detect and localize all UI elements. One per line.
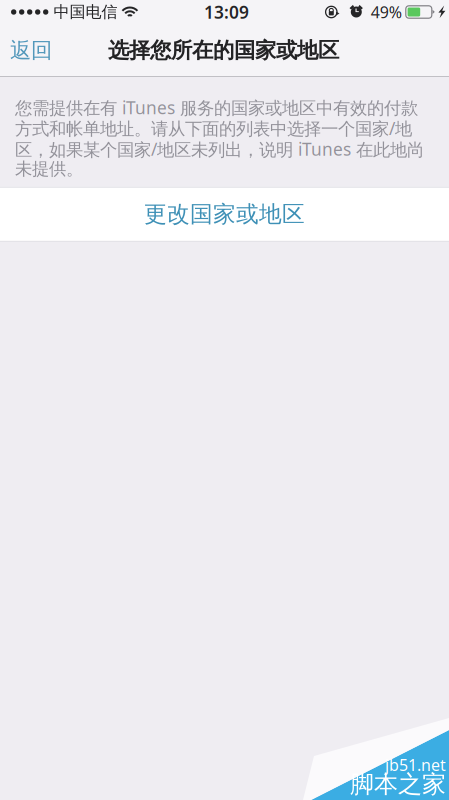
staticText: 选择您所在的国家或地区 [108, 37, 339, 64]
staticText: jb51.net [385, 754, 446, 775]
staticText: 更改国家或地区 [144, 200, 305, 228]
staticText: 13:09 [204, 0, 249, 23]
staticText: 您需提供在有 iTunes 服务的国家或地区中有效的付款 方式和帐单地址。请从下… [15, 96, 424, 180]
staticText: 脚本之家 [350, 769, 446, 799]
button[interactable]: 返回 [0, 24, 68, 77]
staticText: 49% [371, 1, 402, 23]
staticText: 返回 [10, 37, 52, 64]
staticText: 中国电信 [53, 2, 117, 22]
button[interactable]: 更改国家或地区 [0, 187, 449, 242]
